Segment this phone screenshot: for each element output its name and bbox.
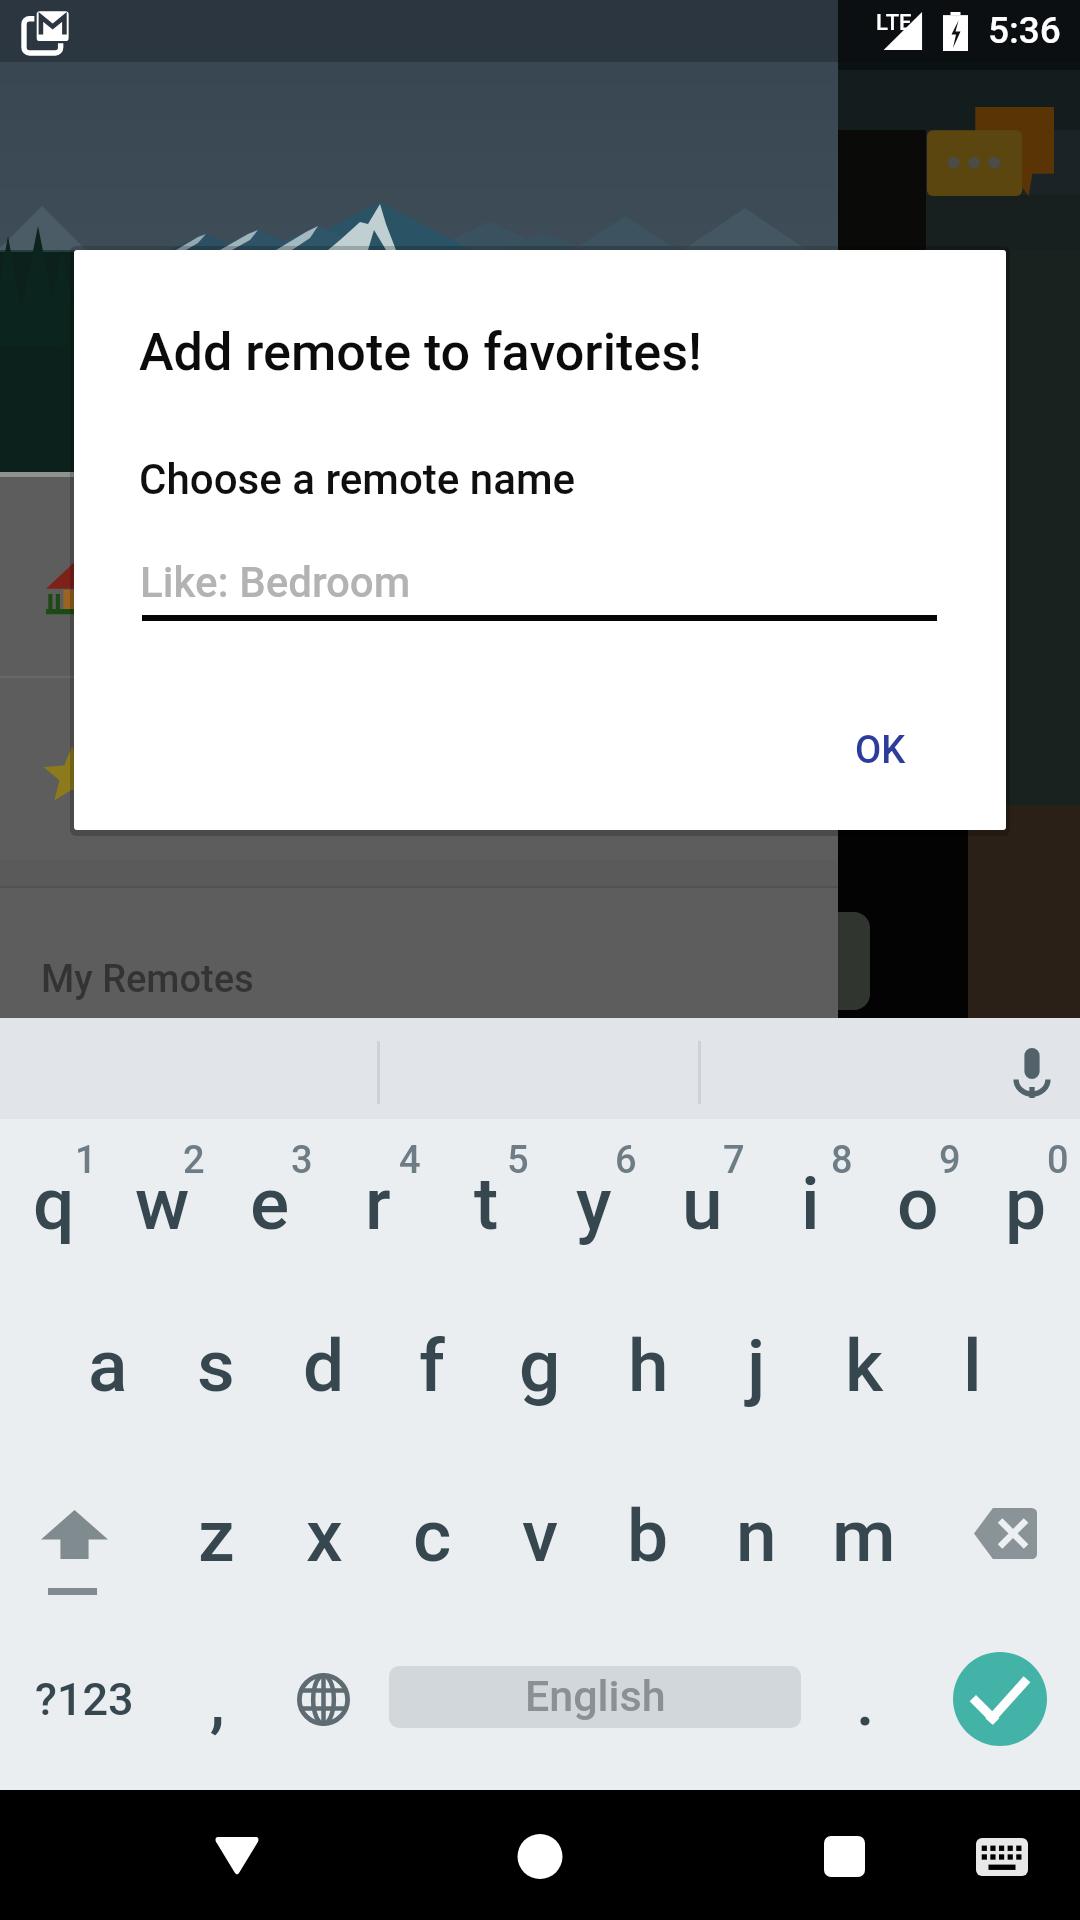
button[interactable]: z bbox=[162, 1493, 270, 1645]
button[interactable]: Backspace bbox=[918, 1473, 1080, 1633]
button[interactable]: c bbox=[378, 1493, 486, 1645]
staticText: p bbox=[1005, 1161, 1047, 1247]
staticText: LTE bbox=[876, 10, 912, 36]
staticText: 8 bbox=[831, 1138, 853, 1183]
button[interactable]: Switch keyboard bbox=[956, 1808, 1048, 1886]
staticText: , bbox=[210, 1664, 225, 1741]
staticText: OK bbox=[855, 728, 906, 773]
button[interactable]: t bbox=[432, 1161, 540, 1313]
staticText: 5 bbox=[507, 1138, 529, 1183]
staticText: r bbox=[365, 1161, 391, 1247]
staticText: 5:36 bbox=[988, 9, 1061, 52]
button[interactable]: j bbox=[702, 1323, 810, 1475]
staticText: d bbox=[303, 1323, 345, 1409]
staticText: z bbox=[198, 1493, 235, 1579]
staticText: Add remote to favorites! bbox=[139, 322, 702, 383]
staticText: q bbox=[33, 1161, 75, 1247]
staticText: a bbox=[88, 1323, 128, 1409]
staticText: g bbox=[519, 1323, 561, 1409]
staticText: l bbox=[963, 1323, 982, 1409]
button[interactable]: Shift bbox=[0, 1473, 162, 1633]
button[interactable]: Enter bbox=[953, 1652, 1047, 1746]
button[interactable]: y bbox=[540, 1161, 648, 1313]
staticText: . bbox=[856, 1664, 875, 1741]
button[interactable]: w bbox=[108, 1161, 216, 1313]
staticText: 2 bbox=[183, 1138, 205, 1183]
staticText: t bbox=[474, 1161, 499, 1247]
button[interactable]: . bbox=[811, 1617, 919, 1769]
button[interactable]: o bbox=[864, 1161, 972, 1313]
button[interactable]: q bbox=[0, 1161, 108, 1313]
button[interactable]: d bbox=[270, 1323, 378, 1475]
button[interactable]: h bbox=[594, 1323, 702, 1475]
staticText: f bbox=[419, 1323, 445, 1409]
button[interactable]: Back bbox=[181, 1801, 293, 1913]
button[interactable]: Voice input bbox=[977, 1020, 1073, 1116]
button[interactable]: p bbox=[972, 1161, 1080, 1313]
button[interactable]: English bbox=[389, 1666, 801, 1728]
button[interactable]: r bbox=[324, 1161, 432, 1313]
button[interactable]: ?123 bbox=[4, 1624, 164, 1776]
staticText: 7 bbox=[723, 1138, 745, 1183]
button[interactable]: b bbox=[594, 1493, 702, 1645]
button[interactable]: , bbox=[163, 1617, 271, 1769]
staticText: x bbox=[306, 1493, 343, 1579]
button[interactable]: n bbox=[702, 1493, 810, 1645]
staticText: c bbox=[413, 1493, 452, 1579]
button[interactable]: Home bbox=[484, 1801, 596, 1913]
staticText: m bbox=[832, 1493, 896, 1579]
staticText: w bbox=[135, 1161, 190, 1247]
staticText: 6 bbox=[615, 1138, 637, 1183]
staticText: b bbox=[627, 1493, 669, 1579]
button[interactable]: a bbox=[54, 1323, 162, 1475]
button[interactable]: f bbox=[378, 1323, 486, 1475]
staticText: o bbox=[897, 1161, 939, 1247]
staticText: Choose a remote name bbox=[139, 455, 576, 504]
staticText: y bbox=[576, 1161, 612, 1247]
staticText: 1 bbox=[75, 1138, 97, 1183]
staticText: i bbox=[801, 1161, 820, 1247]
staticText: e bbox=[250, 1161, 290, 1247]
button[interactable]: OK bbox=[795, 697, 965, 807]
button[interactable]: x bbox=[270, 1493, 378, 1645]
button[interactable]: m bbox=[810, 1493, 918, 1645]
button[interactable]: k bbox=[810, 1323, 918, 1475]
staticText: ?123 bbox=[35, 1673, 134, 1726]
staticText: u bbox=[682, 1161, 723, 1247]
button[interactable]: v bbox=[486, 1493, 594, 1645]
button[interactable]: Change language bbox=[268, 1638, 376, 1790]
staticText: j bbox=[747, 1323, 766, 1409]
staticText: n bbox=[736, 1493, 777, 1579]
staticText: 4 bbox=[399, 1138, 421, 1183]
staticText: v bbox=[522, 1493, 559, 1579]
button[interactable]: e bbox=[216, 1161, 324, 1313]
staticText: 3 bbox=[291, 1138, 313, 1183]
staticText: English bbox=[525, 1671, 666, 1721]
staticText: My Remotes bbox=[41, 957, 254, 1002]
button[interactable]: s bbox=[162, 1323, 270, 1475]
staticText: 0 bbox=[1047, 1138, 1069, 1183]
staticText: h bbox=[628, 1323, 669, 1409]
staticText: k bbox=[845, 1323, 884, 1409]
button[interactable]: u bbox=[648, 1161, 756, 1313]
button[interactable]: i bbox=[756, 1161, 864, 1313]
button[interactable]: g bbox=[486, 1323, 594, 1475]
button[interactable]: Recents bbox=[789, 1801, 901, 1913]
staticText: 9 bbox=[939, 1138, 961, 1183]
button[interactable]: l bbox=[918, 1323, 1026, 1475]
staticText: s bbox=[197, 1323, 235, 1409]
staticText: Like: Bedroom bbox=[140, 558, 411, 607]
